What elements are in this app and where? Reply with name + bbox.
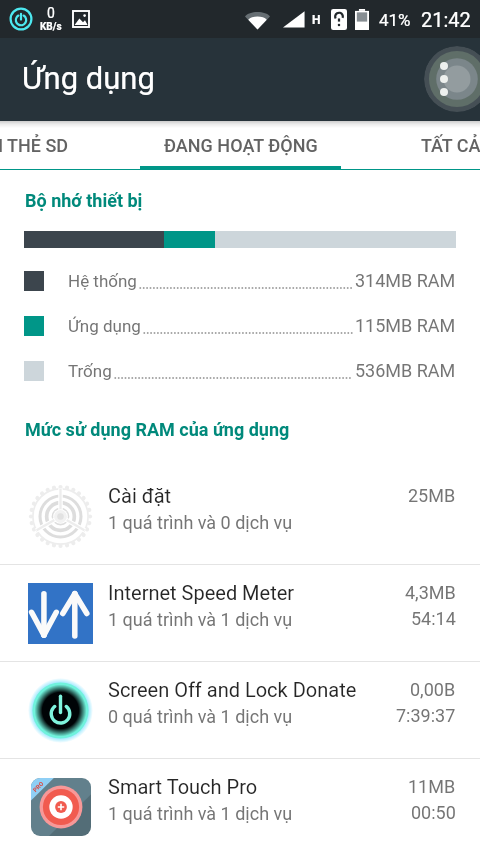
- staticText: Bộ nhớ thiết bị: [25, 190, 143, 211]
- button[interactable]: TẤT CẢ: [356, 121, 480, 170]
- staticText: 7:39:37: [396, 705, 456, 726]
- button[interactable]: ĐANG HOẠT ĐỘNG: [140, 121, 341, 170]
- staticText: 536MB RAM: [355, 360, 456, 381]
- staticText: Ứng dụng: [68, 316, 141, 336]
- staticText: 314MB RAM: [355, 270, 456, 291]
- staticText: 00:50: [411, 802, 456, 823]
- staticText: 115MB RAM: [355, 315, 456, 336]
- staticText: Screen Off and Lock Donate: [108, 678, 357, 701]
- button[interactable]: Cài đặt: [0, 468, 480, 565]
- staticText: 1 quá trình và 0 dịch vụ: [108, 512, 293, 533]
- button[interactable]: Internet Speed Meter: [0, 565, 480, 662]
- button[interactable]: TRÊN THẺ SD: [0, 121, 108, 170]
- staticText: 1 quá trình và 1 dịch vụ: [108, 803, 293, 824]
- button[interactable]: PRO: [0, 759, 480, 854]
- staticText: 11MB: [408, 776, 456, 797]
- staticText: H: [312, 13, 321, 27]
- staticText: ĐANG HOẠT ĐỘNG: [164, 135, 318, 156]
- staticText: 25MB: [408, 485, 456, 506]
- staticText: 4,3MB: [405, 582, 456, 603]
- staticText: 21:42: [421, 8, 471, 31]
- staticText: 54:14: [411, 608, 456, 629]
- staticText: Internet Speed Meter: [108, 581, 295, 604]
- staticText: 0,00B: [410, 679, 456, 700]
- staticText: 0 quá trình và 1 dịch vụ: [108, 706, 293, 727]
- staticText: Ứng dụng: [22, 60, 155, 96]
- staticText: KB/s: [40, 21, 62, 33]
- staticText: 0: [47, 5, 55, 21]
- staticText: PRO: [31, 780, 45, 793]
- staticText: TẤT CẢ: [421, 135, 480, 156]
- staticText: Cài đặt: [108, 484, 172, 507]
- button[interactable]: More options: [424, 46, 480, 112]
- button[interactable]: Screen Off and Lock Donate: [0, 662, 480, 759]
- staticText: 1 quá trình và 1 dịch vụ: [108, 609, 293, 630]
- staticText: Smart Touch Pro: [108, 775, 258, 798]
- staticText: Mức sử dụng RAM của ứng dụng: [25, 419, 290, 440]
- staticText: TRÊN THẺ SD: [0, 135, 69, 156]
- staticText: Trống: [68, 361, 112, 381]
- staticText: Hệ thống: [68, 271, 137, 291]
- staticText: 41%: [379, 10, 411, 30]
